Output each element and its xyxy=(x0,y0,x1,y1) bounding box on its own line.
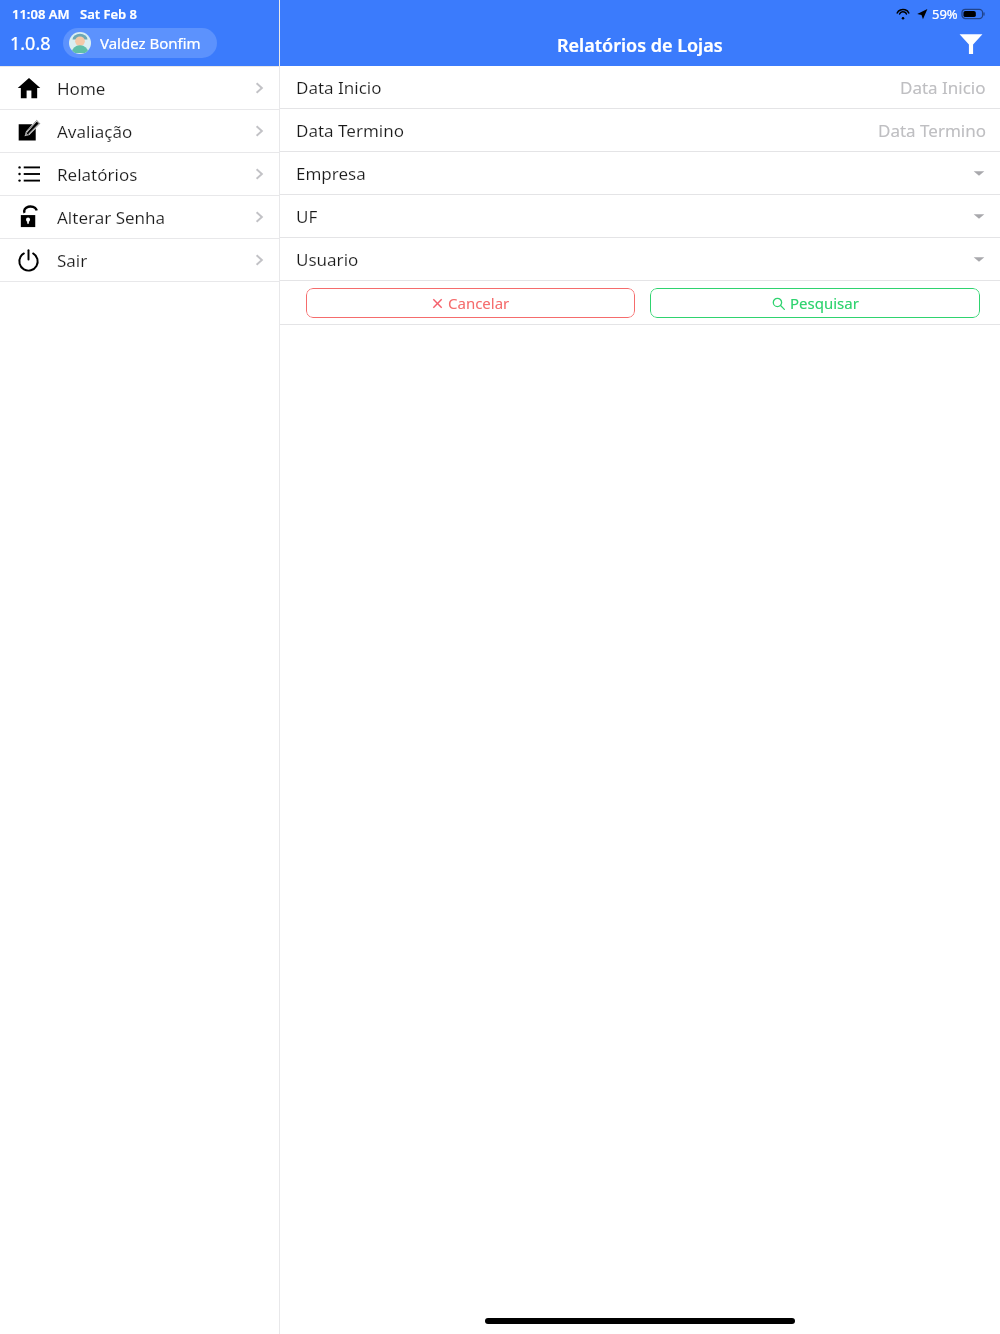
staticText: Data Termino xyxy=(296,119,404,142)
button[interactable]: Alterar Senha xyxy=(0,196,279,238)
staticText: Avaliação xyxy=(57,120,133,143)
staticText: Valdez Bonfim xyxy=(100,33,201,53)
staticText: Relatórios xyxy=(57,163,138,186)
button[interactable]: UF xyxy=(280,195,1000,237)
staticText: Data Termino xyxy=(878,119,986,142)
button[interactable]: Cancelar xyxy=(306,288,635,318)
button[interactable]: Usuario xyxy=(280,238,1000,280)
button[interactable]: Data Termino xyxy=(280,109,1000,151)
staticText: Pesquisar xyxy=(790,293,859,313)
staticText: Data Inicio xyxy=(900,76,986,99)
button[interactable]: Relatórios xyxy=(0,153,279,195)
button[interactable]: Data Inicio xyxy=(280,66,1000,108)
button[interactable]: Empresa xyxy=(280,152,1000,194)
button[interactable]: Pesquisar xyxy=(650,288,980,318)
staticText: Relatórios de Lojas xyxy=(557,33,723,58)
staticText: Usuario xyxy=(296,248,359,271)
staticText: Home xyxy=(57,77,106,100)
staticText: Data Inicio xyxy=(296,76,382,99)
staticText: 11:08 AM xyxy=(12,5,70,23)
staticText: Sair xyxy=(57,249,88,272)
staticText: Sat Feb 8 xyxy=(80,5,137,23)
button[interactable]: Filtrar xyxy=(950,22,992,64)
staticText: Empresa xyxy=(296,162,366,185)
staticText: Cancelar xyxy=(448,293,510,313)
staticText: UF xyxy=(296,205,318,228)
staticText: Alterar Senha xyxy=(57,206,166,229)
button[interactable]: Valdez Bonfim xyxy=(63,28,217,58)
button[interactable]: Avaliação xyxy=(0,110,279,152)
button[interactable]: Home xyxy=(0,67,279,109)
button[interactable]: Sair xyxy=(0,239,279,281)
staticText: 59% xyxy=(932,5,958,23)
staticText: 1.0.8 xyxy=(10,31,51,56)
